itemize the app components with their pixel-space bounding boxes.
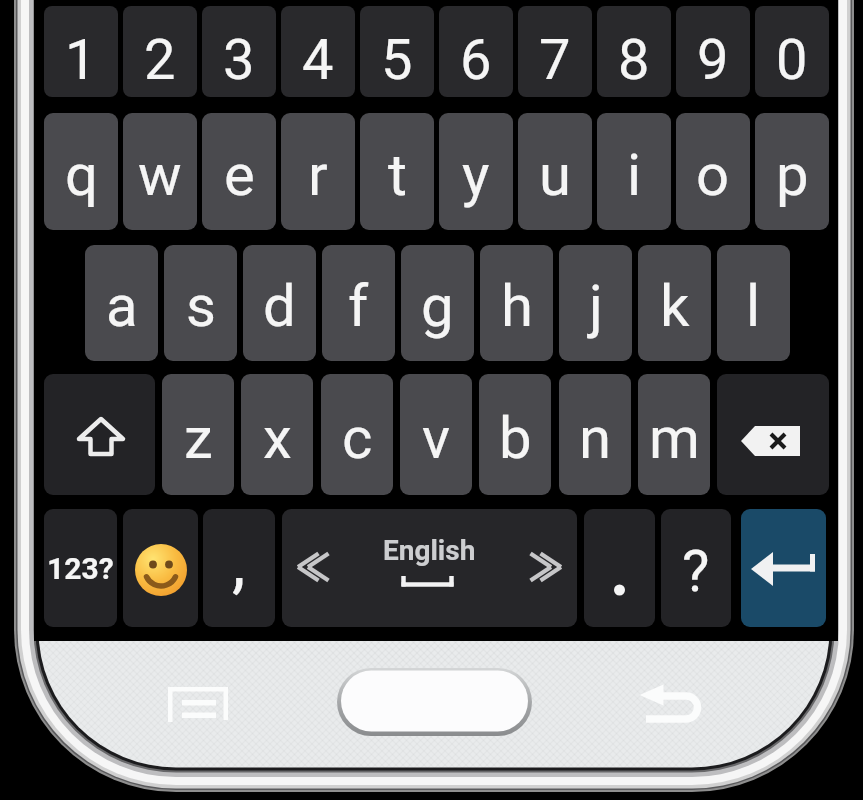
button[interactable]: q bbox=[44, 113, 118, 230]
button[interactable]: 8 bbox=[597, 6, 671, 97]
staticText: b bbox=[499, 404, 532, 472]
button[interactable]: w bbox=[123, 113, 197, 230]
staticText: n bbox=[579, 404, 612, 472]
staticText: y bbox=[462, 141, 490, 209]
staticText: 123? bbox=[47, 551, 114, 586]
staticText: w bbox=[138, 141, 182, 209]
button[interactable] bbox=[632, 678, 706, 730]
staticText: l bbox=[746, 272, 761, 340]
staticText: 7 bbox=[539, 27, 571, 93]
button[interactable]: b bbox=[479, 374, 551, 495]
button[interactable]: p bbox=[755, 113, 829, 230]
button[interactable]: i bbox=[597, 113, 671, 230]
staticText: h bbox=[501, 272, 533, 340]
staticText: 5 bbox=[381, 27, 413, 93]
button[interactable]: k bbox=[638, 245, 711, 361]
button[interactable]: 3 bbox=[202, 6, 276, 97]
button[interactable]: f bbox=[322, 245, 395, 361]
button[interactable]: s bbox=[164, 245, 237, 361]
button[interactable]: 9 bbox=[676, 6, 750, 97]
staticText: j bbox=[589, 272, 603, 340]
staticText: z bbox=[184, 404, 213, 472]
button[interactable]: 7 bbox=[518, 6, 592, 97]
button[interactable]: n bbox=[559, 374, 631, 495]
staticText: 2 bbox=[144, 27, 176, 93]
button[interactable]: 1 bbox=[44, 6, 118, 97]
staticText: ? bbox=[682, 537, 710, 605]
staticText: s bbox=[186, 272, 216, 340]
staticText: t bbox=[388, 141, 407, 209]
button[interactable]: 0 bbox=[755, 6, 829, 97]
staticText: 9 bbox=[697, 27, 729, 93]
staticText: d bbox=[263, 272, 296, 340]
staticText: e bbox=[224, 141, 255, 209]
button[interactable]: r bbox=[281, 113, 355, 230]
staticText: r bbox=[308, 141, 328, 209]
button[interactable]: c bbox=[321, 374, 393, 495]
button[interactable]: x bbox=[241, 374, 313, 495]
staticText: English bbox=[383, 534, 476, 567]
staticText: a bbox=[106, 272, 138, 340]
button[interactable]: v bbox=[400, 374, 472, 495]
staticText: 1 bbox=[65, 27, 97, 93]
staticText: x bbox=[263, 404, 292, 472]
staticText: f bbox=[348, 272, 369, 340]
staticText: p bbox=[776, 141, 809, 209]
staticText: k bbox=[660, 272, 690, 340]
button[interactable] bbox=[123, 509, 198, 627]
button[interactable]: 6 bbox=[439, 6, 513, 97]
staticText: , bbox=[232, 522, 246, 602]
button[interactable]: ? bbox=[661, 509, 731, 627]
button[interactable]: j bbox=[559, 245, 632, 361]
button[interactable] bbox=[584, 509, 655, 627]
staticText: 0 bbox=[776, 27, 808, 93]
button[interactable]: English bbox=[282, 509, 577, 627]
button[interactable]: m bbox=[638, 374, 710, 495]
button[interactable] bbox=[337, 668, 532, 736]
button[interactable]: o bbox=[676, 113, 750, 230]
staticText: q bbox=[65, 141, 98, 209]
staticText: i bbox=[627, 141, 642, 209]
button[interactable] bbox=[741, 509, 826, 627]
staticText: c bbox=[342, 404, 373, 472]
button[interactable]: 2 bbox=[123, 6, 197, 97]
button[interactable]: t bbox=[360, 113, 434, 230]
staticText: 4 bbox=[302, 27, 334, 93]
button[interactable]: y bbox=[439, 113, 513, 230]
button[interactable]: a bbox=[85, 245, 158, 361]
staticText: 6 bbox=[460, 27, 492, 93]
button[interactable] bbox=[717, 374, 829, 495]
staticText: o bbox=[696, 141, 730, 209]
button[interactable] bbox=[44, 374, 155, 495]
button[interactable] bbox=[160, 680, 236, 730]
staticText: 8 bbox=[618, 27, 650, 93]
button[interactable]: d bbox=[243, 245, 316, 361]
button[interactable]: h bbox=[480, 245, 553, 361]
button[interactable]: l bbox=[717, 245, 790, 361]
button[interactable]: u bbox=[518, 113, 592, 230]
staticText: m bbox=[649, 404, 700, 472]
staticText: v bbox=[422, 404, 451, 472]
button[interactable]: e bbox=[202, 113, 276, 230]
button[interactable]: , bbox=[203, 509, 275, 627]
button[interactable]: g bbox=[401, 245, 474, 361]
staticText: 3 bbox=[223, 27, 255, 93]
button[interactable]: z bbox=[162, 374, 234, 495]
staticText: u bbox=[539, 141, 571, 209]
staticText: g bbox=[421, 272, 454, 340]
button[interactable]: 5 bbox=[360, 6, 434, 97]
button[interactable]: 4 bbox=[281, 6, 355, 97]
button[interactable]: 123? bbox=[44, 509, 117, 627]
